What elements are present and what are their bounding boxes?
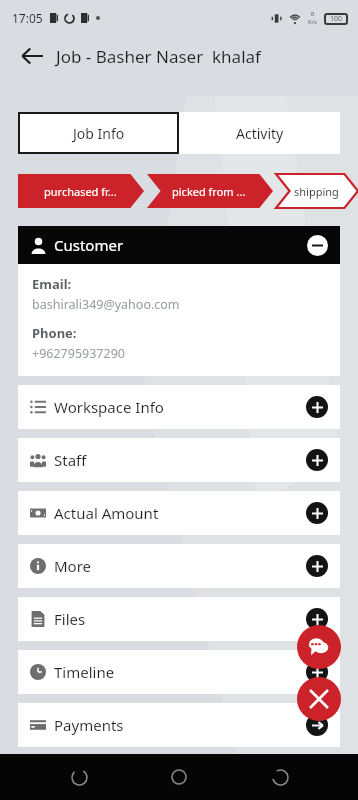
button[interactable]: Expand Staff <box>306 449 328 471</box>
staticText: Activity <box>236 124 284 143</box>
staticText: shipping <box>294 184 339 199</box>
button[interactable]: Expand Files <box>306 608 328 630</box>
button[interactable]: Collapse <box>307 235 328 256</box>
staticText: 100 <box>330 14 343 24</box>
button[interactable]: Staff <box>30 438 328 482</box>
button[interactable]: Timeline <box>30 650 328 694</box>
button[interactable]: Expand Workspace Info <box>306 396 328 418</box>
staticText: bashirali349@yahoo.com <box>32 296 180 313</box>
staticText: Files <box>54 609 86 629</box>
button[interactable]: Expand Actual Amount <box>306 502 328 524</box>
button[interactable]: Back <box>57 755 101 799</box>
button[interactable]: Activity <box>179 112 340 154</box>
button[interactable]: Workspace Info <box>30 385 328 429</box>
button[interactable]: picked from ... <box>147 174 273 208</box>
staticText: B <box>311 11 315 18</box>
staticText: Workspace Info <box>54 397 164 417</box>
staticText: picked from ... <box>172 184 246 199</box>
staticText: Phone: <box>32 324 77 342</box>
button[interactable]: purchased fr... <box>18 174 144 208</box>
staticText: More <box>54 556 92 576</box>
staticText: Job Info <box>73 124 125 143</box>
button[interactable]: Files <box>30 597 328 641</box>
button[interactable]: Expand More <box>306 555 328 577</box>
staticText: 17:05 <box>12 10 43 26</box>
button[interactable]: Close <box>297 677 341 721</box>
staticText: Actual Amount <box>54 503 159 523</box>
button[interactable]: Actual Amount <box>30 491 328 535</box>
staticText: Payments <box>54 715 124 735</box>
staticText: purchased fr... <box>44 184 117 199</box>
button[interactable]: Recents <box>258 755 302 799</box>
button[interactable]: Job Info <box>18 112 179 154</box>
staticText: Timeline <box>54 662 115 682</box>
button[interactable]: shipping <box>276 174 358 208</box>
staticText: Customer <box>54 235 124 255</box>
staticText: +962795937290 <box>32 345 125 362</box>
button[interactable]: More <box>30 544 328 588</box>
staticText: K/s <box>308 18 317 26</box>
staticText: Staff <box>54 450 87 470</box>
button[interactable]: Open Payments <box>306 714 328 736</box>
button[interactable]: Payments <box>30 703 328 747</box>
button[interactable]: Customer <box>30 226 328 264</box>
staticText: Email: <box>32 275 72 293</box>
button[interactable]: Expand Timeline <box>306 661 328 683</box>
button[interactable]: Chat <box>297 625 341 669</box>
button[interactable]: Home <box>157 755 201 799</box>
button[interactable]: Back <box>12 36 52 76</box>
staticText: Job - Basher Naser khalaf <box>56 45 261 68</box>
